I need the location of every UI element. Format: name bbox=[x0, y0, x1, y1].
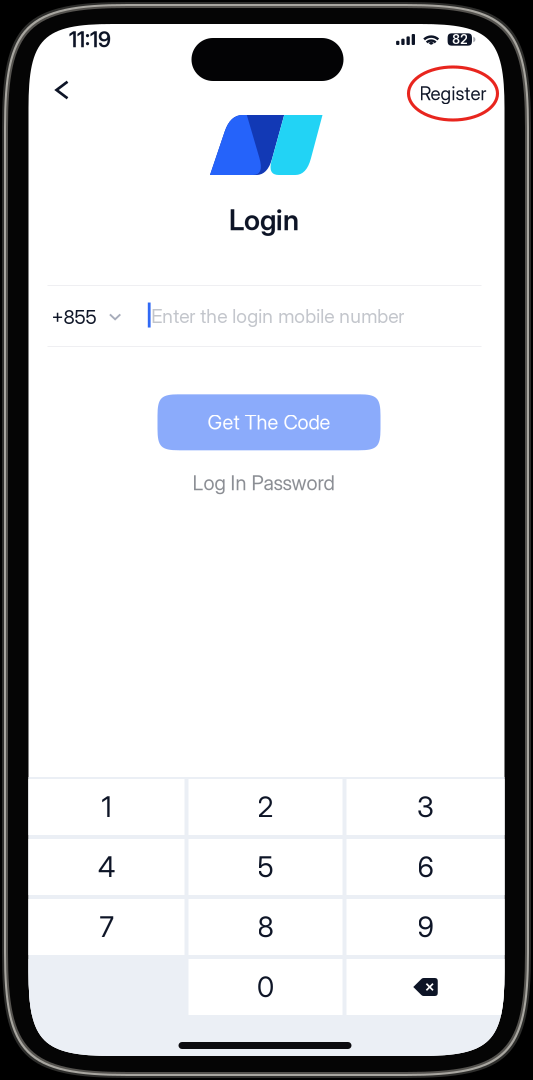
staticText: 4 bbox=[98, 850, 115, 884]
button[interactable]: 9 bbox=[346, 899, 504, 955]
button[interactable]: Log In Password bbox=[163, 465, 363, 501]
staticText: 7 bbox=[99, 910, 113, 944]
staticText: 82 bbox=[452, 32, 467, 47]
staticText: Register bbox=[419, 82, 486, 105]
staticText: 5 bbox=[257, 850, 273, 884]
staticText: 6 bbox=[417, 850, 433, 884]
staticText: 9 bbox=[417, 910, 433, 944]
button[interactable]: 5 bbox=[188, 839, 342, 895]
button[interactable]: Back bbox=[39, 67, 85, 113]
button[interactable]: 8 bbox=[188, 899, 342, 955]
button[interactable]: 0 bbox=[188, 959, 342, 1015]
staticText: 1 bbox=[101, 790, 111, 824]
button[interactable]: +855 bbox=[51, 293, 135, 341]
button[interactable]: 6 bbox=[346, 839, 504, 895]
button[interactable]: 3 bbox=[346, 779, 504, 835]
button[interactable]: 7 bbox=[28, 899, 184, 955]
button[interactable]: Delete bbox=[346, 959, 504, 1015]
staticText: Log In Password bbox=[192, 471, 334, 495]
staticText: 0 bbox=[257, 970, 274, 1004]
button[interactable]: 4 bbox=[28, 839, 184, 895]
staticText: Login bbox=[229, 203, 299, 237]
staticText: Enter the login mobile number bbox=[151, 304, 404, 328]
staticText: 11:19 bbox=[69, 27, 111, 52]
staticText: Get The Code bbox=[207, 410, 330, 434]
button[interactable]: Blank bbox=[28, 959, 184, 1015]
button[interactable]: 1 bbox=[28, 779, 184, 835]
button[interactable]: Get The Code bbox=[157, 394, 380, 450]
staticText: +855 bbox=[51, 305, 96, 329]
staticText: 2 bbox=[257, 790, 273, 824]
button[interactable]: 2 bbox=[188, 779, 342, 835]
button[interactable]: Register bbox=[405, 64, 500, 123]
staticText: 3 bbox=[417, 790, 434, 824]
staticText: 8 bbox=[257, 910, 273, 944]
